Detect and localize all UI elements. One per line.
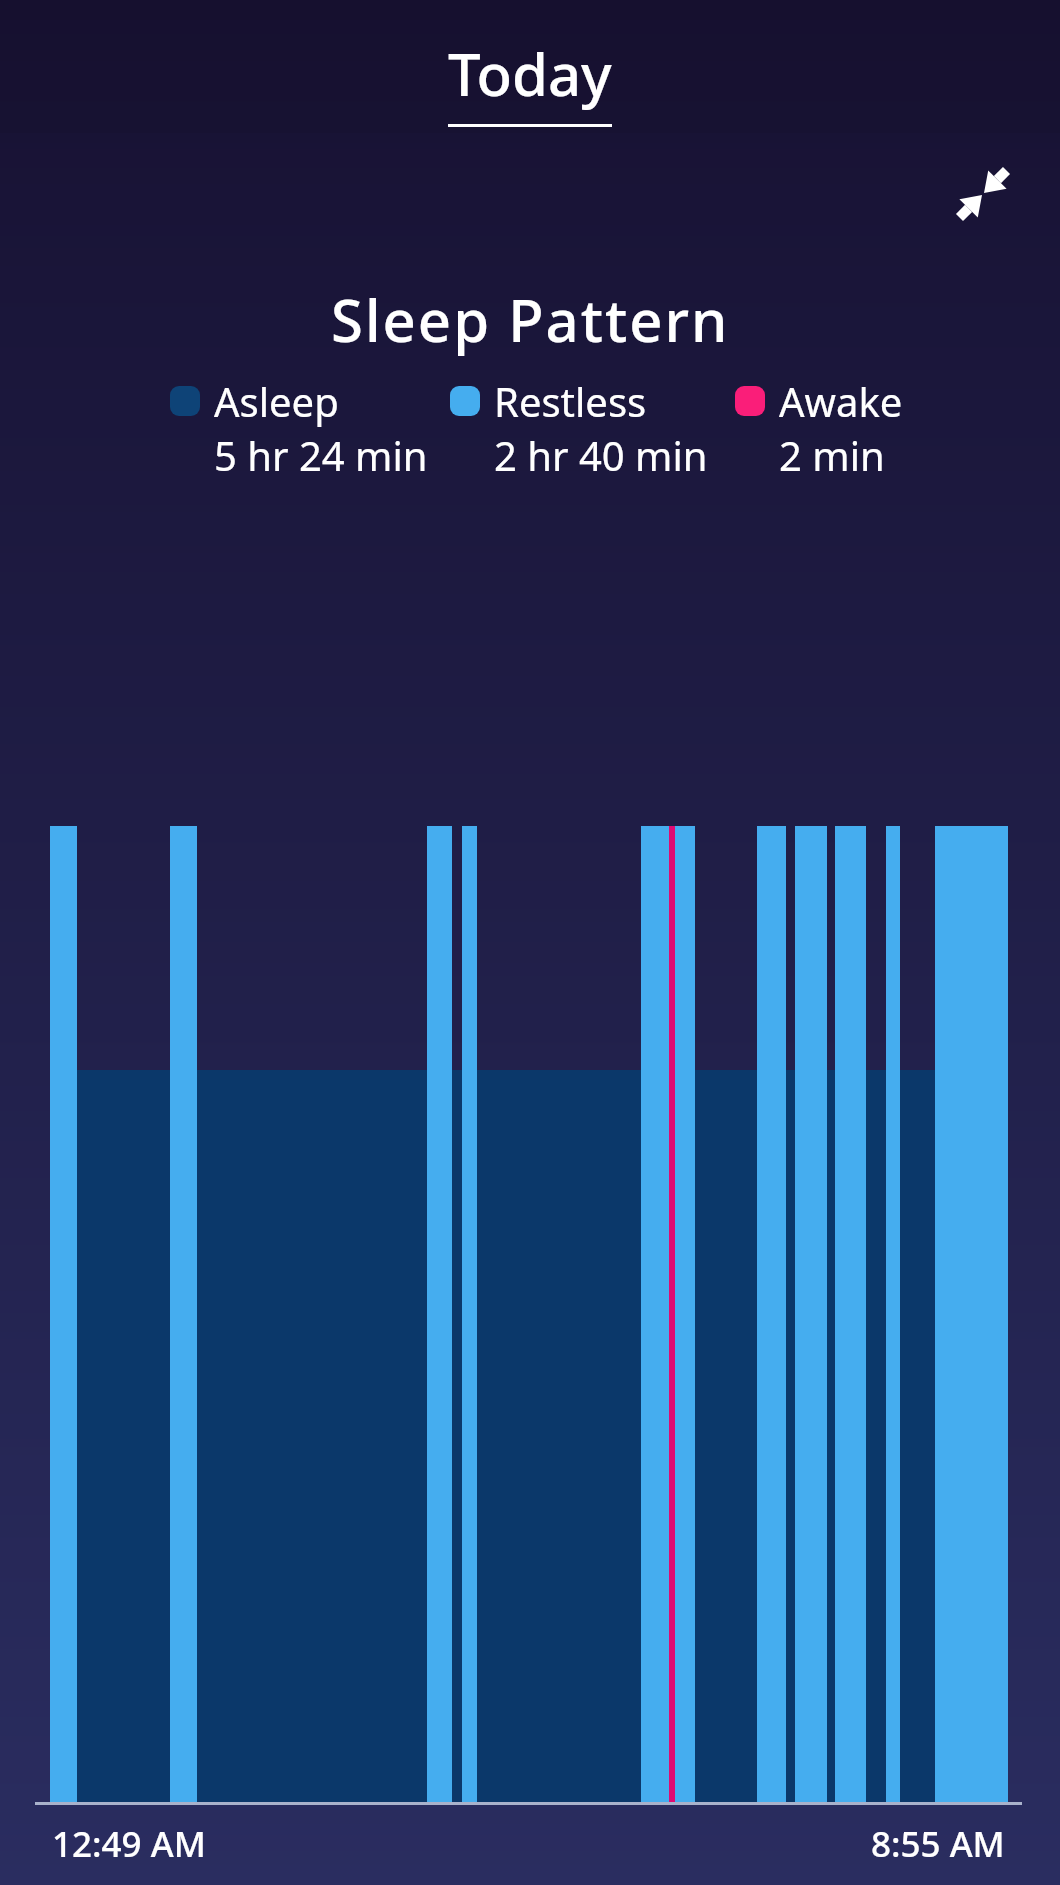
button[interactable]: Today	[448, 0, 612, 113]
staticText: 12:49 AM	[52, 1820, 206, 1868]
staticText: Awake	[779, 374, 903, 428]
staticText: Restless	[494, 374, 647, 428]
staticText: Sleep Pattern	[331, 280, 730, 359]
staticText: Today	[448, 34, 612, 113]
staticText: 2 min	[779, 428, 885, 482]
staticText: 5 hr 24 min	[214, 428, 428, 482]
button[interactable]	[940, 155, 1020, 235]
staticText: 8:55 AM	[871, 1820, 1005, 1868]
staticText: Asleep	[214, 374, 339, 428]
staticText: 2 hr 40 min	[494, 428, 708, 482]
